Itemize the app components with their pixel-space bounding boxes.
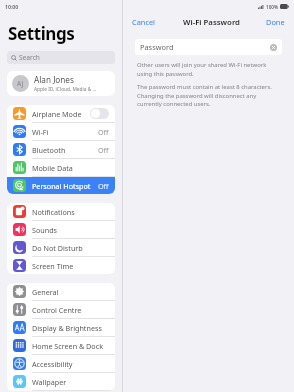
staticText: Do Not Disturb xyxy=(32,243,109,253)
staticText: AJ xyxy=(17,79,24,88)
staticText: Off xyxy=(98,145,109,155)
button[interactable]: Wallpaper xyxy=(7,373,115,390)
button[interactable]: Display & Brightness xyxy=(7,319,115,336)
staticText: Apple ID, iCloud, Media & … xyxy=(34,86,97,93)
staticText: Display & Brightness xyxy=(32,323,109,333)
button[interactable]: Airplane Mode toggle xyxy=(90,108,109,119)
staticText: Airplane Mode xyxy=(32,109,90,119)
staticText: The password must contain at least 8 cha… xyxy=(137,83,280,107)
staticText: Settings xyxy=(8,22,75,45)
staticText: Mobile Data xyxy=(32,163,109,173)
button[interactable]: Search xyxy=(7,51,115,64)
staticText: 10:00 xyxy=(5,3,19,10)
button[interactable]: Done xyxy=(264,15,287,29)
staticText: Off xyxy=(98,181,109,191)
staticText: Wi-Fi xyxy=(32,127,98,137)
button[interactable]: Password xyxy=(135,39,282,55)
staticText: Password xyxy=(140,42,270,52)
button[interactable]: Notifications xyxy=(7,203,115,220)
staticText: Wallpaper xyxy=(32,377,109,387)
button[interactable]: Control Centre xyxy=(7,301,115,318)
staticText: General xyxy=(32,287,109,297)
button[interactable]: Sounds xyxy=(7,221,115,238)
staticText: Accessibility xyxy=(32,359,109,369)
button[interactable]: Do Not Disturb xyxy=(7,239,115,256)
staticText: Screen Time xyxy=(32,261,109,271)
staticText: Alan Jones xyxy=(34,74,74,85)
button[interactable]: Wi-Fi xyxy=(7,123,115,140)
button[interactable]: Screen Time xyxy=(7,257,115,274)
staticText: 100% xyxy=(266,4,278,10)
button[interactable]: Clear password xyxy=(270,44,277,51)
button[interactable]: Personal Hotspot xyxy=(7,177,115,194)
button[interactable]: Mobile Data xyxy=(7,159,115,176)
button[interactable]: Bluetooth xyxy=(7,141,115,158)
staticText: Cancel xyxy=(132,17,156,27)
staticText: Personal Hotspot xyxy=(32,181,98,191)
staticText: Notifications xyxy=(32,207,109,217)
staticText: Done xyxy=(266,17,285,27)
staticText: Control Centre xyxy=(32,305,109,315)
staticText: Off xyxy=(98,127,109,137)
staticText: Home Screen & Dock xyxy=(32,341,109,351)
button[interactable]: Accessibility xyxy=(7,355,115,372)
button[interactable]: Cancel xyxy=(130,15,158,29)
button[interactable]: AJ xyxy=(7,71,115,96)
button[interactable]: General xyxy=(7,283,115,300)
staticText: Search xyxy=(19,53,40,62)
staticText: Bluetooth xyxy=(32,145,98,155)
staticText: Wi-Fi Password xyxy=(183,17,240,28)
staticText: Other users will join your shared Wi-Fi … xyxy=(137,61,280,77)
staticText: Sounds xyxy=(32,225,109,235)
button[interactable]: Airplane Mode xyxy=(7,105,115,122)
button[interactable]: Home Screen & Dock xyxy=(7,337,115,354)
